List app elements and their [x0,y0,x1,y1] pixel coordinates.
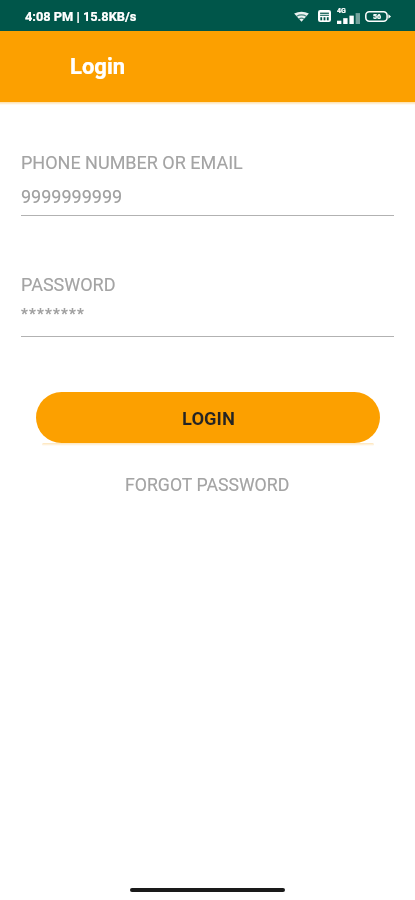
other: Mobile data [318,10,331,22]
button[interactable]: PHONE NUMBER OR EMAIL [21,146,394,216]
button[interactable]: FORGOT PASSWORD [0,471,415,499]
staticText: 4G [337,7,346,15]
staticText: PHONE NUMBER OR EMAIL [21,152,243,173]
button[interactable]: LOGIN [36,392,380,443]
staticText: PASSWORD [21,274,116,295]
other: Wi-Fi [294,10,309,22]
staticText: FORGOT PASSWORD [125,475,290,496]
button[interactable]: PASSWORD [21,268,394,337]
other: Mobile signal 4G [337,8,360,24]
staticText: Login [70,54,126,80]
staticText: ******** [21,305,86,323]
staticText: 9999999999 [21,186,123,207]
other: Battery 56 percent [365,11,391,22]
staticText: LOGIN [182,408,235,430]
staticText: 56 [373,13,382,21]
staticText: 4:08 PM | 15.8KB/s [25,9,137,24]
